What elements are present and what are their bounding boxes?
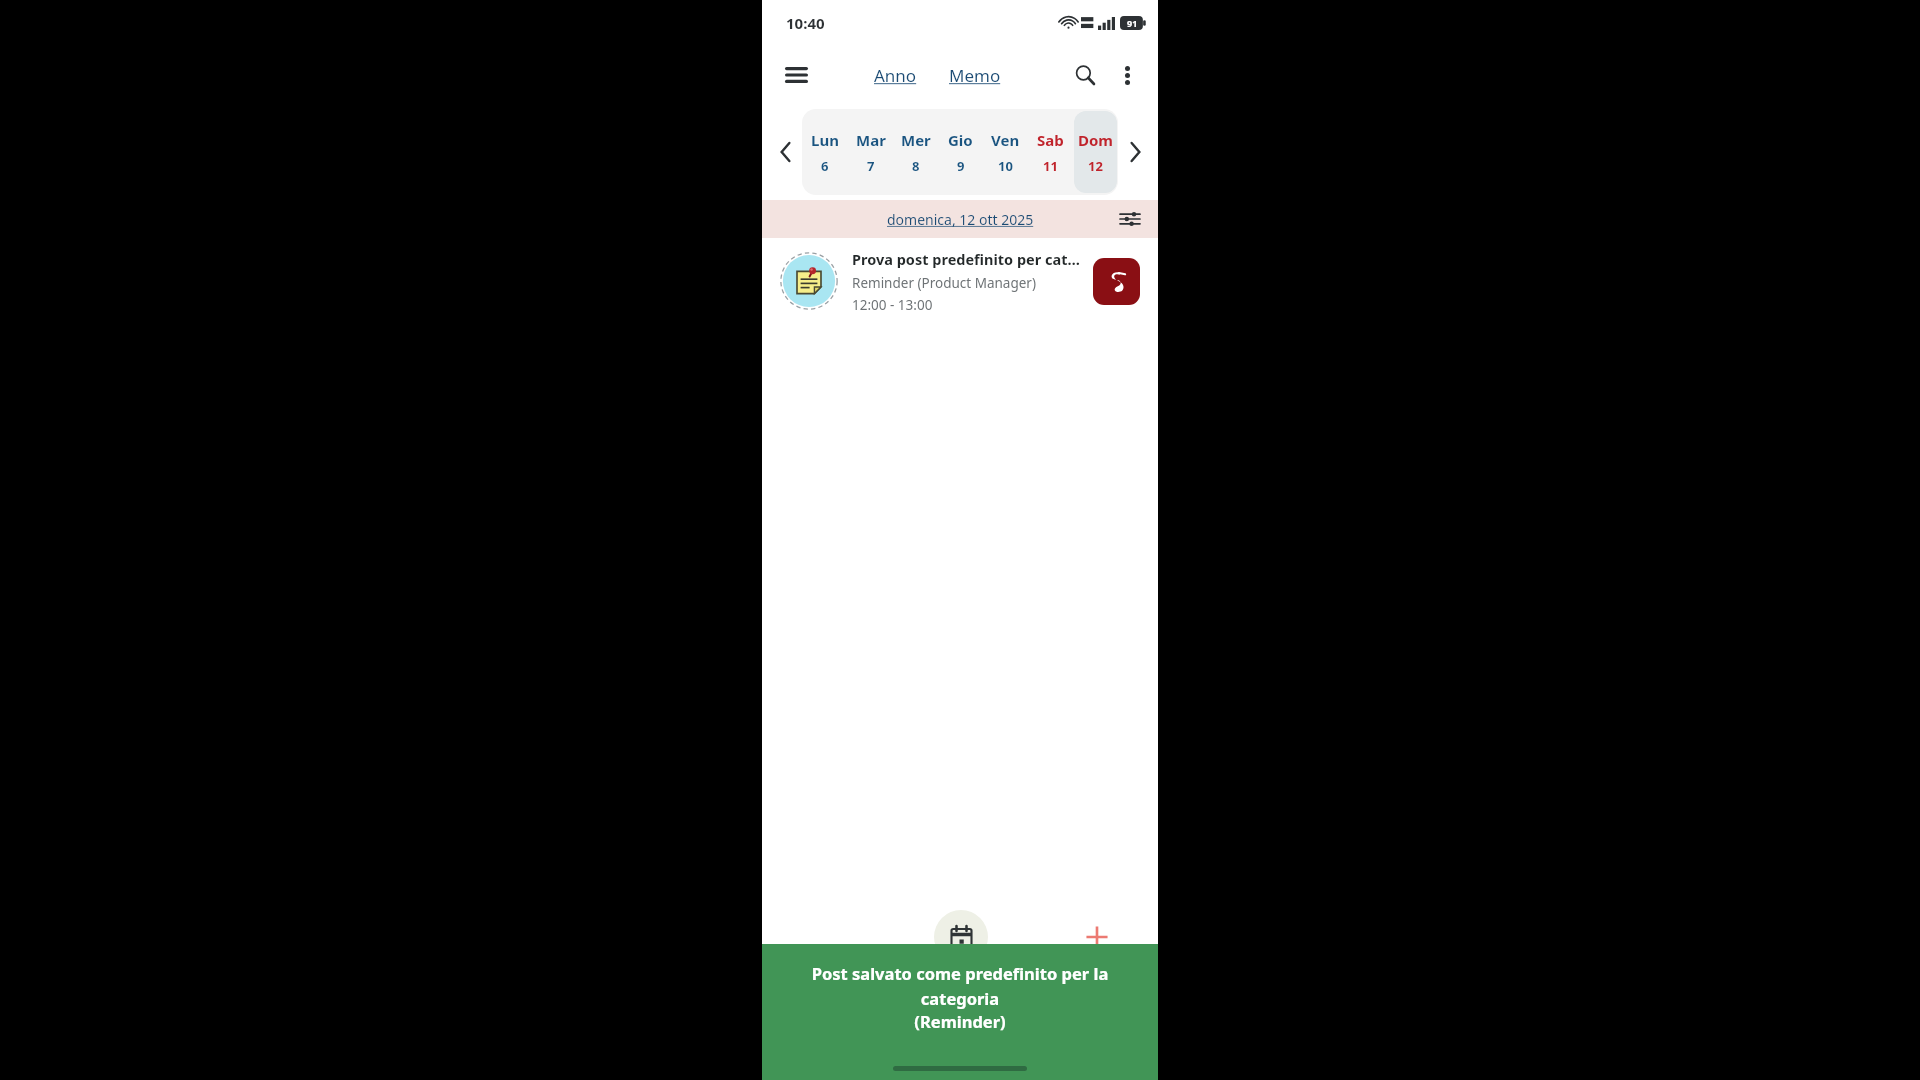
button[interactable]: Prova post predefinito per catego… [762,238,1158,324]
button[interactable]: Add event [1070,910,1124,964]
staticText: Dom [1078,130,1113,150]
button[interactable]: domenica, 12 ott 2025 [883,206,1038,233]
staticText: Reminder (Product Manager) [852,274,1036,292]
staticText: (Reminder) [914,1010,1006,1032]
button[interactable]: Post salvato come predefinito per la cat… [762,944,1158,1080]
staticText: Anno [874,64,917,87]
button[interactable]: Lun [803,111,847,193]
button[interactable]: Mer [894,111,937,193]
staticText: Post salvato come predefinito per la cat… [784,962,1136,1010]
staticText: 12 [1088,157,1103,175]
staticText: Gio [948,130,973,150]
staticText: Prova post predefinito per catego… [852,249,1083,269]
staticText: 7 [867,157,875,175]
staticText: 11 [1043,157,1058,175]
button[interactable]: Memo [945,58,1005,93]
button[interactable]: Sab [1029,111,1072,193]
staticText: Memo [949,64,1001,87]
staticText: 8 [912,157,920,175]
button[interactable]: Calendar [934,910,988,964]
staticText: 6 [821,157,829,175]
staticText: 12:00 - 13:00 [852,296,933,314]
button[interactable]: Ven [984,111,1027,193]
staticText: domenica, 12 ott 2025 [887,210,1034,229]
button[interactable]: More options [1106,54,1148,96]
staticText: Lun [811,130,839,150]
button[interactable]: Mar [849,111,892,193]
staticText: 10 [998,157,1013,175]
button[interactable]: Search [1064,54,1106,96]
button[interactable]: Anno [870,58,921,93]
button[interactable]: Category icon [1093,258,1140,305]
staticText: Mer [901,130,931,150]
staticText: 10:40 [786,13,825,33]
button[interactable]: Filter [1114,203,1146,235]
staticText: Ven [991,130,1020,150]
button[interactable]: Previous week [768,135,802,169]
button[interactable]: Open navigation menu [774,53,818,97]
button[interactable]: Next week [1118,135,1152,169]
button[interactable]: Gio [939,111,982,193]
staticText: 9 [957,157,965,175]
button[interactable]: Dom [1074,111,1117,193]
staticText: 91 [1127,17,1138,29]
staticText: Sab [1037,130,1064,150]
staticText: Mar [856,130,886,150]
